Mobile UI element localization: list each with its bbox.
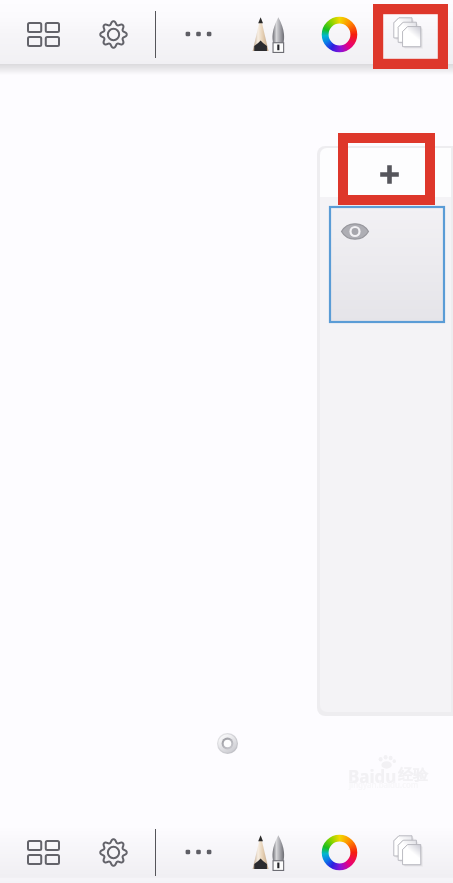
button[interactable]: Gallery [27, 22, 60, 47]
staticText: jingyan.baidu.com [349, 779, 419, 790]
button[interactable]: Layers [393, 835, 428, 870]
button[interactable]: Brush size [217, 733, 238, 754]
button[interactable]: Layers [393, 17, 428, 52]
button[interactable]: Colour [321, 16, 358, 53]
button[interactable]: Settings [99, 838, 128, 867]
button[interactable]: Gallery [27, 840, 60, 865]
staticText: 经验 [398, 766, 428, 785]
button[interactable]: More options [181, 24, 216, 44]
button[interactable]: Settings [99, 20, 128, 49]
button[interactable]: More options [181, 842, 216, 862]
button[interactable] [330, 207, 444, 322]
button[interactable]: Colour [321, 834, 358, 871]
button[interactable]: Brushes [249, 15, 287, 53]
button[interactable]: Brushes [249, 833, 287, 871]
staticText: Baidu [348, 765, 397, 788]
button[interactable]: Add layer [320, 148, 451, 197]
